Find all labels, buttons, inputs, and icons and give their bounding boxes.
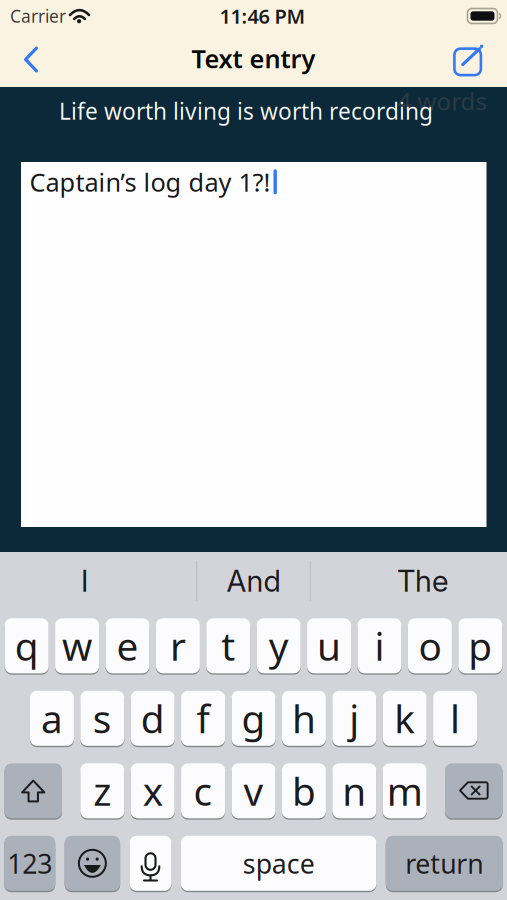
staticText: i xyxy=(374,620,384,671)
button[interactable]: return xyxy=(386,835,503,891)
button[interactable]: I xyxy=(0,552,169,610)
button[interactable]: Delete xyxy=(445,763,502,819)
button[interactable]: e xyxy=(105,618,149,674)
staticText: o xyxy=(418,620,441,671)
button[interactable]: z xyxy=(80,763,124,819)
button[interactable]: i xyxy=(357,618,401,674)
button[interactable]: k xyxy=(383,690,427,746)
button[interactable]: r xyxy=(156,618,200,674)
button[interactable]: s xyxy=(80,690,124,746)
staticText: c xyxy=(194,765,213,816)
button[interactable]: u xyxy=(307,618,351,674)
button[interactable]: Compose xyxy=(454,31,507,87)
staticText: 11:46 PM xyxy=(219,3,305,29)
staticText: space xyxy=(243,846,315,881)
staticText: v xyxy=(243,765,263,816)
staticText: f xyxy=(197,693,210,744)
staticText: d xyxy=(141,693,165,744)
staticText: g xyxy=(241,693,265,744)
button[interactable]: l xyxy=(433,690,477,746)
staticText: return xyxy=(405,846,483,881)
staticText: s xyxy=(93,693,112,744)
button[interactable]: Back xyxy=(0,32,38,86)
staticText: Life worth living is worth recording xyxy=(59,96,433,126)
button[interactable]: j xyxy=(332,690,376,746)
button[interactable]: f xyxy=(181,690,225,746)
staticText: 123 xyxy=(7,846,52,881)
button[interactable]: t xyxy=(206,618,250,674)
button[interactable]: q xyxy=(5,618,49,674)
staticText: q xyxy=(15,620,39,671)
staticText: x xyxy=(143,765,163,816)
staticText: The xyxy=(397,563,448,599)
staticText: n xyxy=(342,765,366,816)
button[interactable]: c xyxy=(181,763,225,819)
staticText: And xyxy=(226,563,280,599)
staticText: 4 words xyxy=(397,85,486,117)
button[interactable]: Emoji xyxy=(65,835,120,891)
staticText: u xyxy=(317,620,341,671)
button[interactable]: space xyxy=(181,835,376,891)
button[interactable]: v xyxy=(231,763,275,819)
staticText: Text entry xyxy=(191,42,315,75)
staticText: r xyxy=(170,620,186,671)
staticText: b xyxy=(292,765,316,816)
staticText: e xyxy=(116,620,138,671)
button[interactable]: a xyxy=(30,690,74,746)
button[interactable]: w xyxy=(55,618,99,674)
button[interactable]: x xyxy=(131,763,175,819)
button[interactable]: o xyxy=(408,618,452,674)
staticText: j xyxy=(349,693,359,744)
staticText: Carrier xyxy=(10,4,66,27)
button[interactable]: Dictate xyxy=(129,835,171,891)
staticText: Captain’s log day 1?! xyxy=(29,165,270,199)
staticText: I xyxy=(81,563,88,599)
staticText: l xyxy=(450,693,460,744)
button[interactable]: y xyxy=(257,618,301,674)
staticText: k xyxy=(394,693,415,744)
button[interactable]: Shift xyxy=(4,763,62,819)
button[interactable]: d xyxy=(131,690,175,746)
staticText: h xyxy=(292,693,316,744)
button[interactable]: p xyxy=(458,618,502,674)
button[interactable]: n xyxy=(332,763,376,819)
button[interactable]: The xyxy=(338,552,507,610)
button[interactable]: And xyxy=(169,552,338,610)
staticText: p xyxy=(468,620,492,671)
staticText: a xyxy=(41,693,63,744)
button[interactable]: b xyxy=(282,763,326,819)
button[interactable]: 123 xyxy=(4,835,55,891)
staticText: t xyxy=(221,620,235,671)
staticText: m xyxy=(387,765,423,816)
button[interactable]: h xyxy=(282,690,326,746)
button[interactable]: m xyxy=(383,763,427,819)
staticText: z xyxy=(93,765,111,816)
staticText: y xyxy=(269,620,289,671)
button[interactable]: g xyxy=(231,690,275,746)
staticText: w xyxy=(62,620,92,671)
